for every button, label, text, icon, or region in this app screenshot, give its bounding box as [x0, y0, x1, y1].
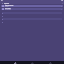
- button[interactable]: Recently played: [1, 5, 63, 7]
- button[interactable]: [2, 12, 62, 14]
- button[interactable]: Search: [29, 62, 35, 64]
- staticText: 24 items: [5, 6, 9, 7]
- button[interactable]: [2, 21, 62, 23]
- staticText: Your mixes: [5, 8, 11, 9]
- button[interactable]: Home: [12, 62, 18, 64]
- button[interactable]: [2, 18, 62, 20]
- button[interactable]: Library: [47, 62, 53, 64]
- staticText: Recently played: [5, 5, 14, 6]
- staticText: 9:41: [1, 0, 3, 1]
- staticText: Home: [14, 63, 17, 64]
- button[interactable]: Search: [61, 2, 63, 4]
- staticText: Library: [4, 2, 61, 4]
- staticText: Search: [31, 63, 34, 64]
- button[interactable]: Menu: [1, 2, 3, 4]
- button[interactable]: [2, 15, 62, 17]
- staticText: Updated today: [5, 9, 11, 10]
- button[interactable]: [1, 11, 63, 60]
- button[interactable]: Your mixes: [1, 8, 63, 10]
- staticText: Library: [49, 63, 52, 64]
